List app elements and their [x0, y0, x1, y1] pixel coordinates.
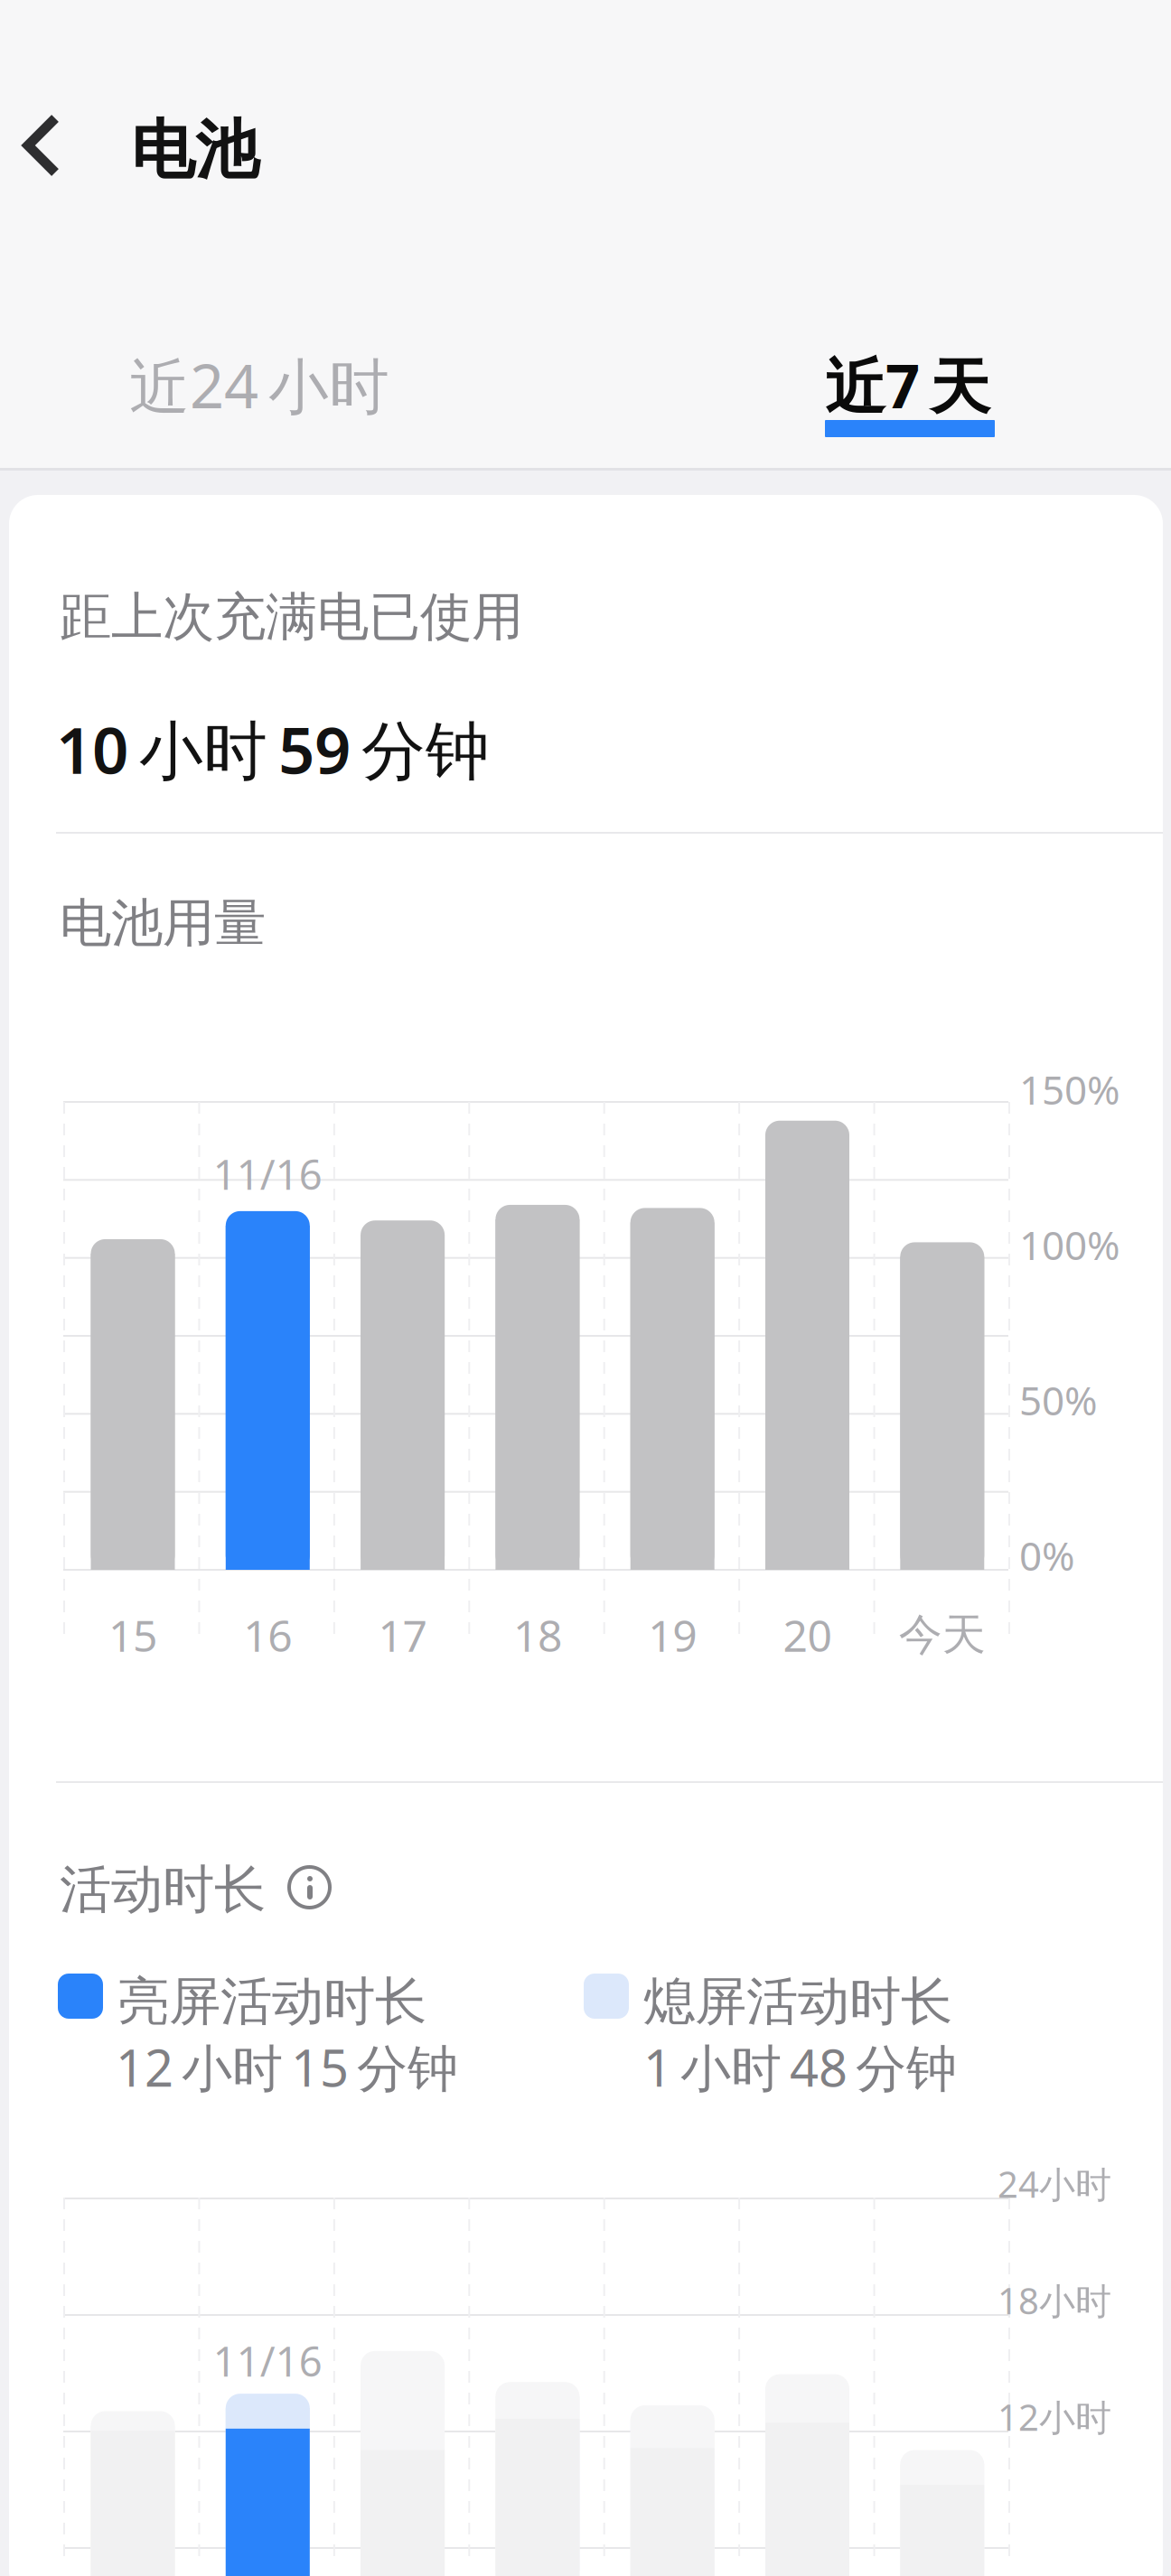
staticText: 16	[243, 1606, 292, 1664]
staticText: 15	[108, 1606, 157, 1664]
staticText: 亮屏活动时长	[117, 1970, 426, 2034]
staticText: 100%	[1019, 1218, 1120, 1271]
button[interactable]: 近24小时	[129, 341, 518, 486]
staticText: 150%	[1019, 1063, 1120, 1116]
staticText: 熄屏活动时长	[643, 1970, 952, 2034]
staticText: 活动时长	[60, 1858, 266, 1922]
staticText: 电池	[131, 111, 259, 189]
staticText: 20	[783, 1606, 832, 1664]
staticText: 近7 天	[825, 345, 990, 425]
staticText: 距上次充满电已使用	[60, 585, 523, 649]
staticText: 1 小时 48 分钟	[643, 2033, 957, 2101]
staticText: 电池用量	[60, 891, 266, 955]
staticText: 10 小时 59 分钟	[56, 707, 490, 791]
button[interactable]: 近7 天	[825, 341, 1051, 486]
staticText: 12小时	[998, 2393, 1111, 2441]
staticText: 19	[648, 1606, 697, 1664]
staticText: 0%	[1019, 1529, 1075, 1582]
staticText: 近24 小时	[129, 345, 389, 425]
staticText: 12 小时 15 分钟	[116, 2033, 458, 2101]
staticText: 今天	[899, 1608, 986, 1662]
staticText: 17	[378, 1606, 427, 1664]
staticText: 11/16	[213, 1147, 322, 1201]
button[interactable]: Back	[4, 85, 119, 201]
staticText: 18	[513, 1606, 562, 1664]
staticText: 18小时	[998, 2276, 1111, 2324]
staticText: 50%	[1019, 1374, 1098, 1426]
staticText: 24小时	[998, 2160, 1111, 2208]
staticText: 11/16	[213, 2333, 322, 2388]
